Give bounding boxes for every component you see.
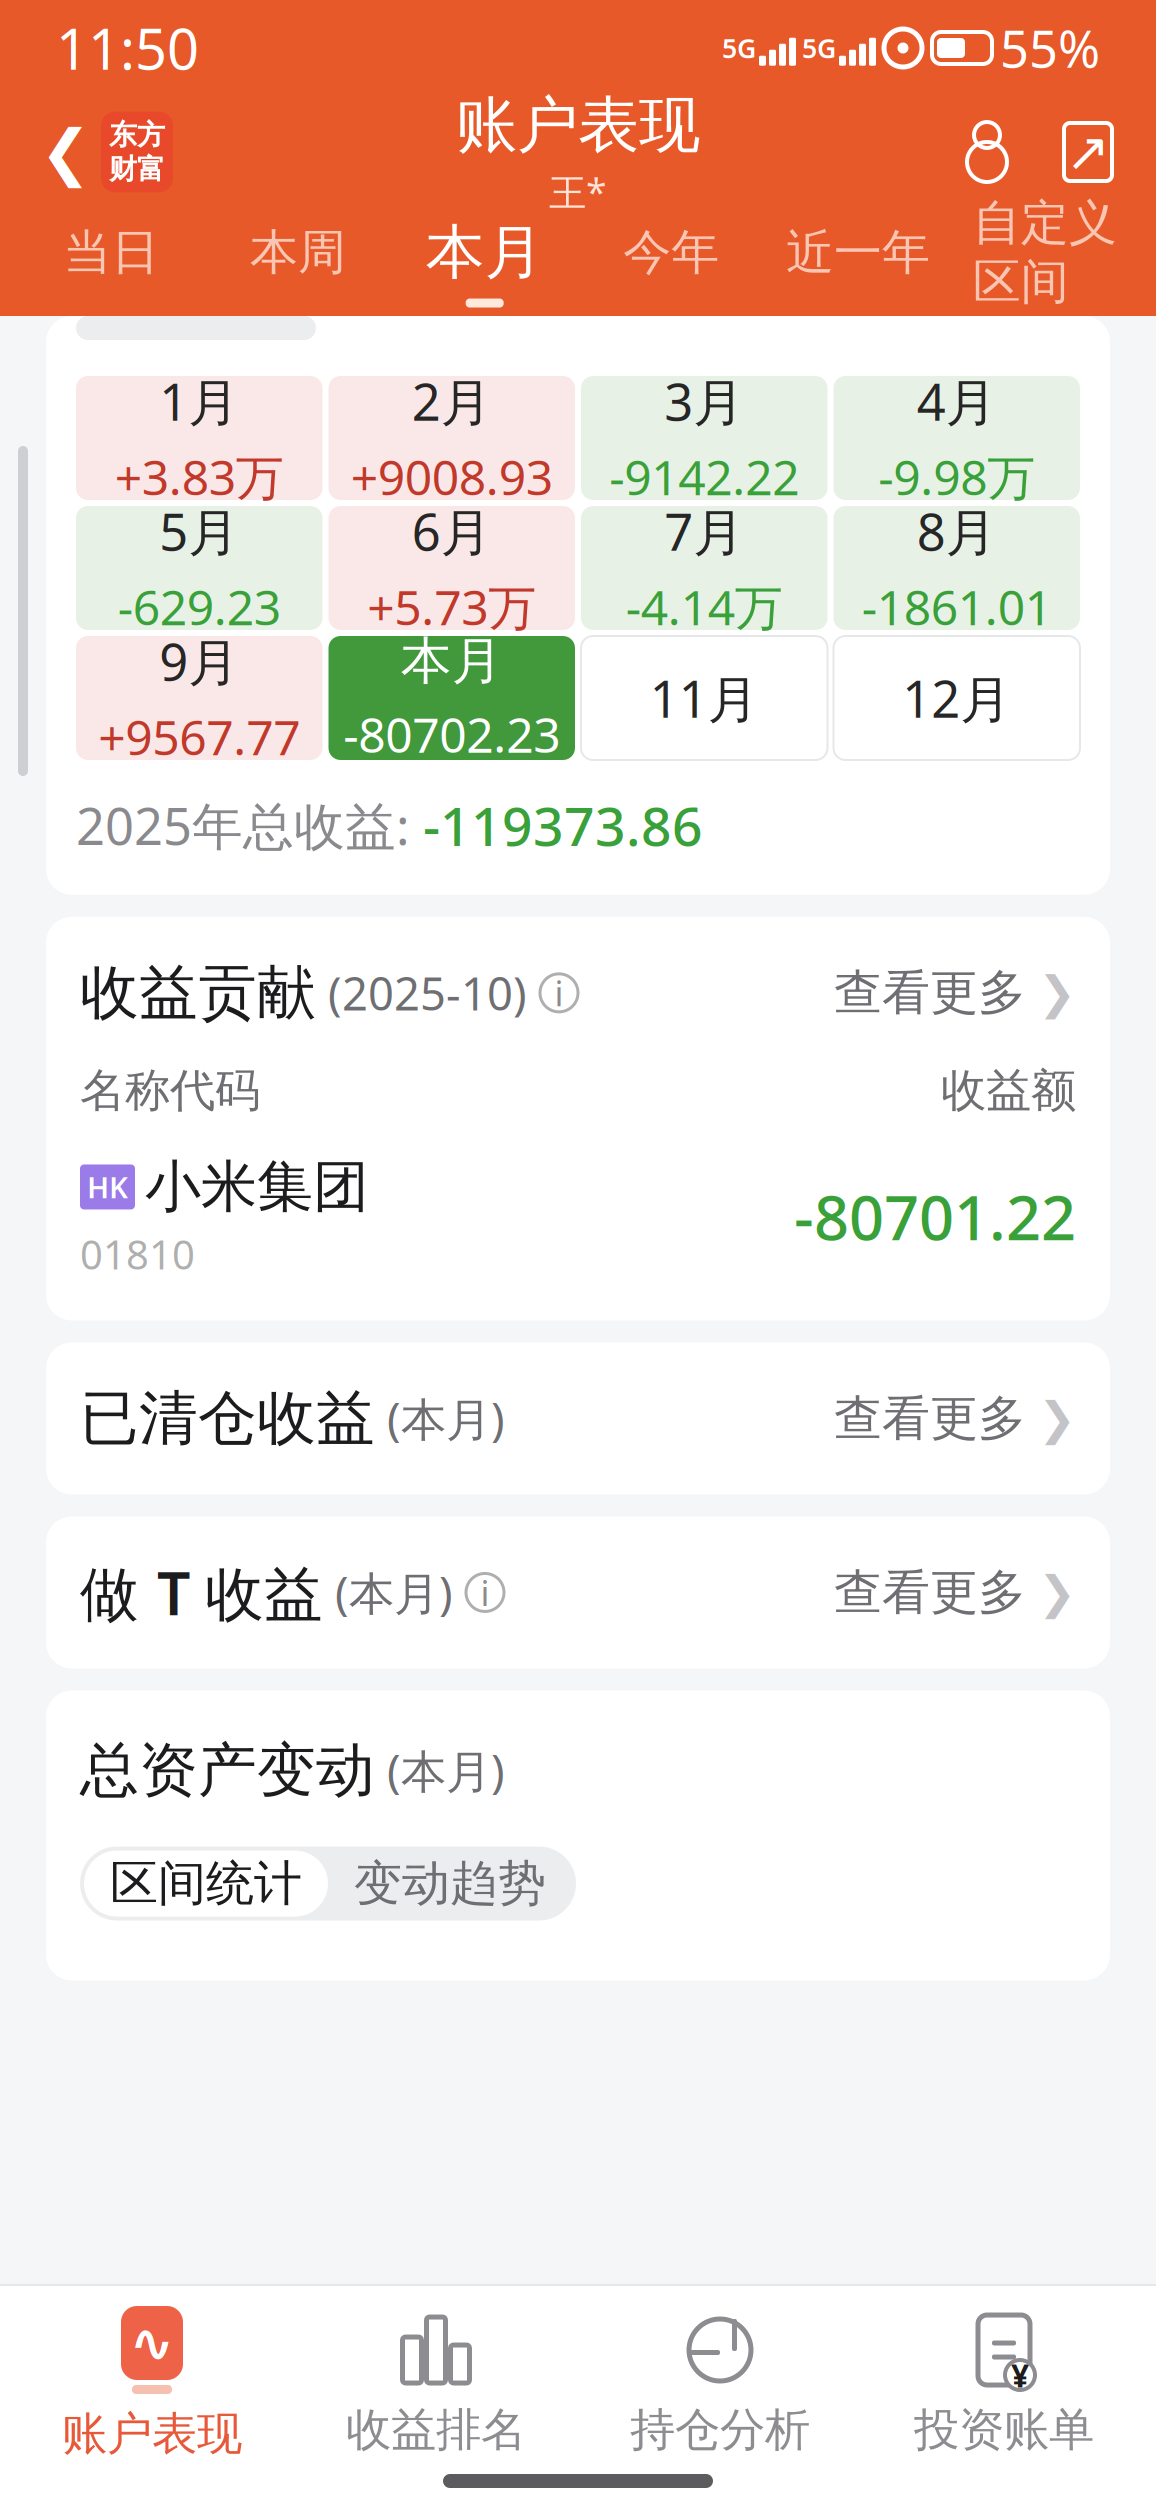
staticText: 东方 — [109, 118, 165, 152]
staticText: (本月) — [375, 1740, 505, 1801]
staticText: 持仓分析 — [630, 2402, 810, 2458]
button[interactable]: 近一年 — [765, 223, 951, 301]
staticText: 总资产变动 — [80, 1734, 375, 1807]
staticText: 9月 — [159, 627, 239, 695]
staticText: -629.23 — [118, 575, 281, 638]
staticText: 本月 — [401, 630, 503, 692]
staticText: ❯ — [1038, 967, 1076, 1019]
staticText: HK — [87, 1167, 128, 1206]
staticText: 01810 — [80, 1227, 195, 1280]
staticText: 查看更多 — [834, 1389, 1026, 1448]
staticText: +5.73万 — [367, 575, 536, 638]
button[interactable]: 11月 — [581, 636, 827, 760]
staticText: ↗ — [1065, 122, 1110, 182]
button[interactable]: 账户 — [958, 121, 1016, 183]
staticText: 投资账单 — [914, 2402, 1094, 2458]
staticText: 11:50 — [56, 11, 199, 85]
staticText: (本月) — [323, 1562, 453, 1623]
staticText: -80702.23 — [343, 702, 560, 766]
button[interactable]: 12月 — [833, 636, 1080, 760]
staticText: (本月) — [375, 1388, 505, 1449]
staticText: 今年 — [623, 223, 719, 282]
staticText: 本月 — [426, 216, 544, 289]
button[interactable]: 5月 — [76, 506, 322, 630]
staticText: 2月 — [412, 367, 492, 435]
button[interactable]: 今年 — [578, 223, 765, 301]
button[interactable]: 1月 — [76, 376, 322, 500]
staticText: ¥ — [1011, 2354, 1029, 2396]
button[interactable]: 收益排名 — [294, 2308, 578, 2458]
staticText: -4.14万 — [626, 575, 783, 638]
staticText: 4月 — [917, 367, 997, 435]
staticText: 55% — [1000, 14, 1100, 82]
staticText: 账户表现 — [456, 87, 700, 163]
staticText: ❯ — [1038, 1567, 1076, 1618]
button[interactable]: 9月 — [76, 636, 322, 760]
staticText: i — [480, 1569, 489, 1615]
staticText: 12月 — [902, 664, 1011, 732]
button[interactable]: 本月 — [328, 636, 575, 760]
staticText: 8月 — [917, 497, 997, 565]
staticText: 5G — [802, 30, 836, 66]
button[interactable]: 查看更多 — [834, 1563, 1076, 1622]
staticText: 账户表现 — [62, 2406, 242, 2462]
button[interactable]: 当日 — [18, 223, 205, 301]
staticText: 6月 — [412, 497, 492, 565]
staticText: 5G — [722, 30, 756, 66]
staticText: 区间统计 — [110, 1854, 302, 1913]
staticText: ∿ — [129, 2313, 174, 2373]
staticText: -1861.01 — [862, 575, 1052, 638]
button[interactable]: ¥ — [862, 2308, 1146, 2458]
staticText: 5月 — [159, 497, 239, 565]
button[interactable]: 本周 — [205, 223, 391, 301]
staticText: 财富 — [109, 152, 165, 186]
button[interactable]: 8月 — [833, 506, 1080, 630]
staticText: +9008.93 — [351, 445, 553, 508]
button[interactable]: 2月 — [328, 376, 575, 500]
staticText: 名称代码 — [80, 1063, 260, 1119]
staticText: -9.98万 — [878, 445, 1035, 508]
staticText: 2025年总收益: — [76, 792, 423, 859]
staticText: 1月 — [159, 367, 239, 435]
staticText: 做 T 收益 — [80, 1553, 323, 1631]
button[interactable]: ∿ — [10, 2304, 294, 2462]
button[interactable]: 返回 — [40, 112, 173, 192]
staticText: +3.83万 — [115, 445, 284, 508]
button[interactable]: HK — [46, 1153, 1110, 1280]
staticText: i — [554, 970, 563, 1016]
button[interactable]: 7月 — [581, 506, 827, 630]
button[interactable]: 区间统计 — [84, 1850, 328, 1916]
staticText: ❯ — [1038, 1393, 1076, 1444]
button[interactable]: 自定义区间 — [951, 193, 1138, 330]
button[interactable]: 3月 — [581, 376, 827, 500]
staticText: ❮ — [40, 117, 91, 187]
button[interactable]: 本月 — [391, 216, 578, 308]
staticText: 收益额 — [941, 1063, 1076, 1119]
staticText: 本周 — [250, 223, 346, 282]
button[interactable]: 6月 — [328, 506, 575, 630]
staticText: 7月 — [664, 497, 744, 565]
staticText: 收益贡献 — [80, 957, 316, 1029]
button[interactable]: 持仓分析 — [578, 2308, 862, 2458]
button[interactable]: 变动趋势 — [328, 1850, 572, 1916]
staticText: 3月 — [664, 367, 744, 435]
button[interactable]: 说明 — [465, 1572, 505, 1612]
staticText: -80701.22 — [794, 1176, 1076, 1257]
staticText: 查看更多 — [834, 963, 1026, 1022]
staticText: 收益排名 — [346, 2402, 526, 2458]
button[interactable]: 分享 — [1060, 121, 1116, 183]
staticText: 王* — [549, 167, 607, 216]
staticText: (2025-10) — [316, 963, 527, 1023]
staticText: 当日 — [63, 223, 159, 282]
staticText: 自定义区间 — [973, 193, 1117, 311]
staticText: 查看更多 — [834, 1563, 1026, 1622]
staticText: 11月 — [650, 664, 759, 732]
button[interactable]: 查看更多 — [834, 963, 1076, 1022]
staticText: 变动趋势 — [354, 1854, 546, 1913]
button[interactable]: 4月 — [833, 376, 1080, 500]
staticText: -119373.86 — [423, 790, 703, 861]
staticText: -9142.22 — [609, 445, 799, 508]
staticText: 小米集团 — [145, 1153, 369, 1221]
button[interactable]: 查看更多 — [834, 1389, 1076, 1448]
button[interactable]: 说明 — [539, 973, 579, 1013]
